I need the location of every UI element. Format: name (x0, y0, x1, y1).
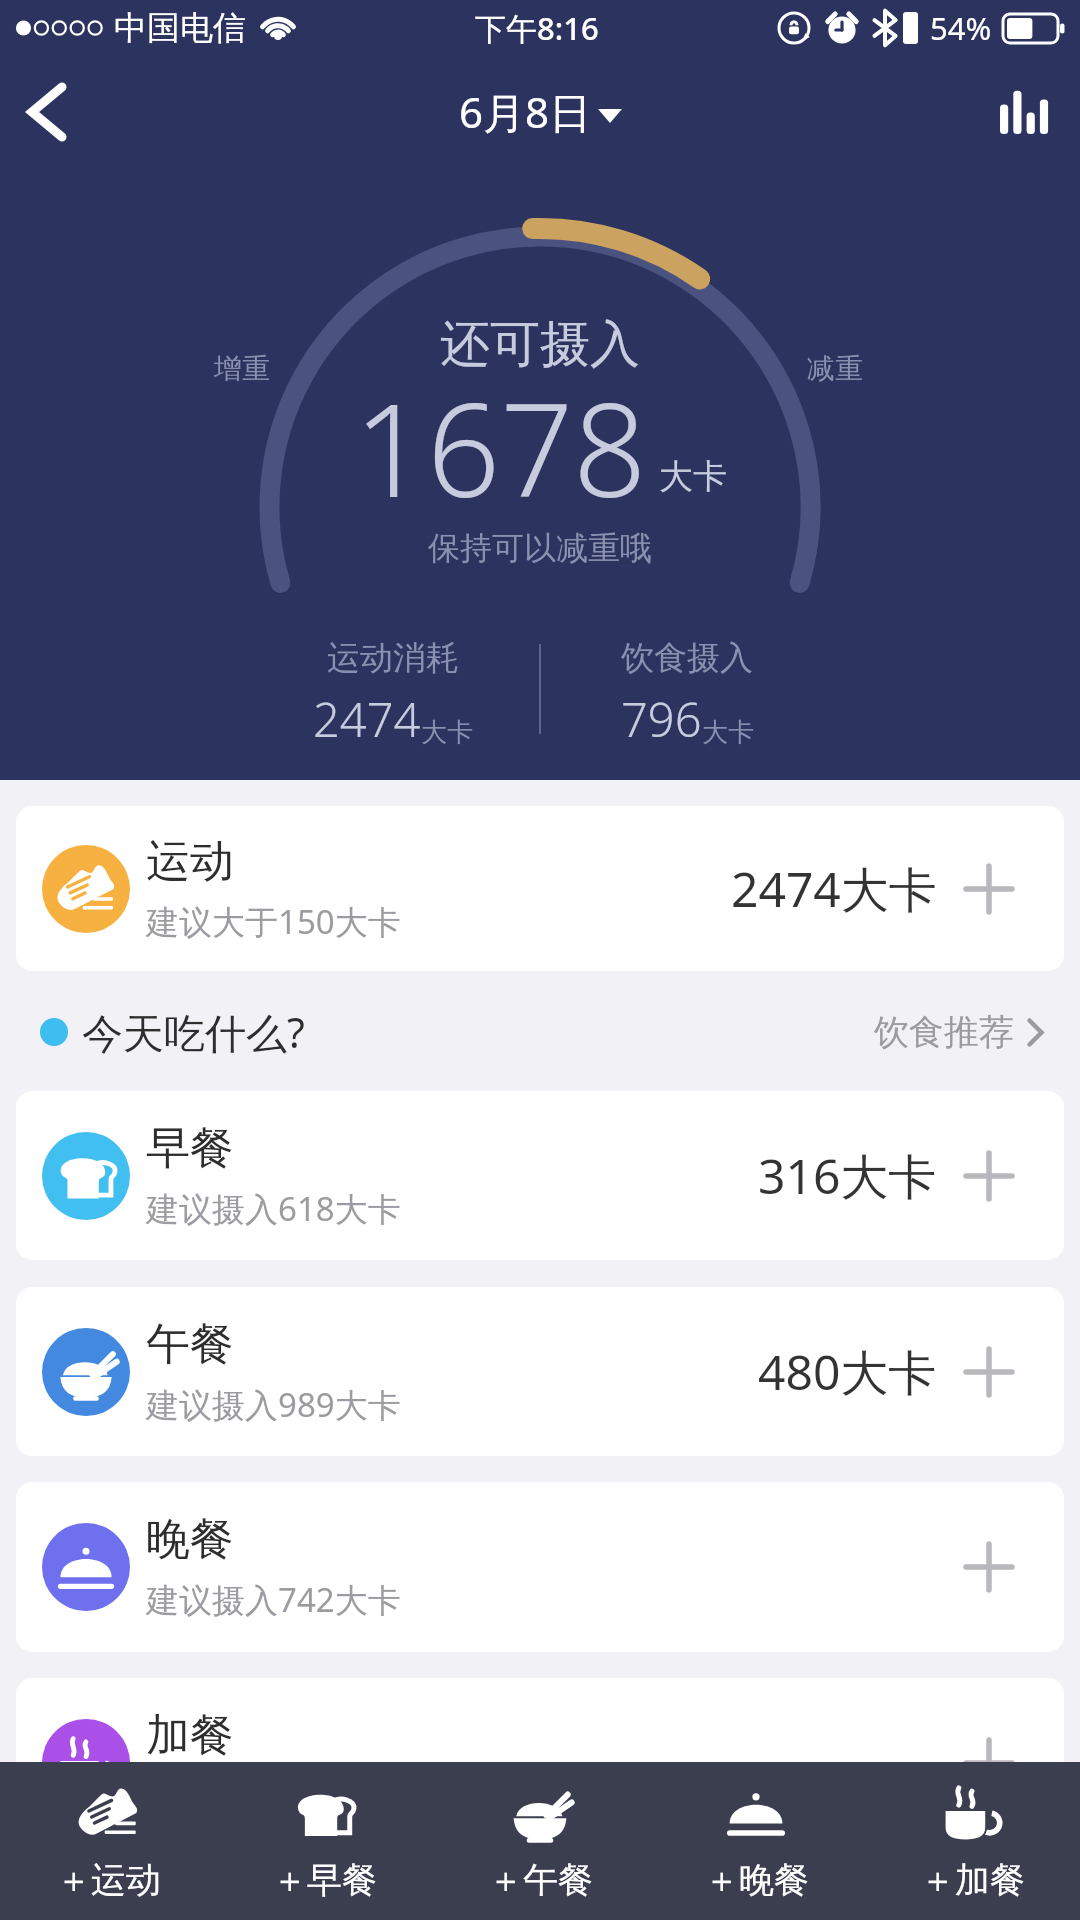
staticText: 建议摄入989大卡 (146, 1382, 401, 1427)
staticText: 大卡 (702, 716, 754, 749)
staticText: 晚餐 (146, 1512, 234, 1567)
staticText: 316大卡 (758, 1143, 937, 1209)
staticText: 2474 (313, 687, 421, 751)
staticText: 饮食摄入 (621, 637, 753, 679)
staticText: 早餐 (146, 1121, 234, 1176)
staticText: 796 (621, 687, 702, 751)
staticText: 480大卡 (758, 1339, 937, 1405)
staticText: 下午8:16 (475, 7, 599, 49)
staticText: 加餐 (146, 1708, 234, 1763)
button[interactable]: 晚餐 (16, 1482, 1064, 1652)
staticText: 减重 (807, 351, 863, 386)
staticText: ＋晚餐 (704, 1858, 809, 1902)
staticText: 饮食推荐 (874, 1010, 1014, 1054)
staticText: ＋午餐 (488, 1858, 593, 1902)
staticText: ＋早餐 (272, 1858, 377, 1902)
button[interactable]: Add 运动 (957, 857, 1021, 921)
button[interactable]: Add 晚餐 (957, 1535, 1021, 1599)
staticText: 建议大于150大卡 (146, 899, 401, 944)
staticText: 今天吃什么? (82, 1004, 305, 1060)
staticText: 建议摄入742大卡 (146, 1577, 401, 1622)
button[interactable]: ＋晚餐 (648, 1762, 864, 1920)
button[interactable]: Statistics (980, 66, 1070, 156)
button[interactable]: 6月8日 (459, 83, 622, 140)
staticText: 还可摄入 (440, 313, 640, 376)
staticText: 54% (930, 7, 992, 49)
staticText: 运动消耗 (327, 637, 459, 679)
staticText: 大卡 (421, 716, 473, 749)
button[interactable]: ＋加餐 (864, 1762, 1080, 1920)
button[interactable]: ＋运动 (0, 1762, 216, 1920)
staticText: 6月8日 (459, 83, 592, 140)
staticText: 保持可以减重哦 (428, 528, 652, 568)
button[interactable]: 运动 (16, 806, 1064, 971)
button[interactable]: Back (0, 59, 104, 163)
button[interactable]: 加餐 (16, 1678, 1064, 1848)
staticText: 1678 (354, 360, 647, 534)
staticText: 中国电信 (114, 7, 246, 49)
button[interactable]: ＋午餐 (432, 1762, 648, 1920)
staticText: 建议摄入618大卡 (146, 1186, 401, 1231)
button[interactable]: Add 午餐 (957, 1340, 1021, 1404)
button[interactable]: Add 早餐 (957, 1144, 1021, 1208)
button[interactable]: ＋早餐 (216, 1762, 432, 1920)
staticText: 大卡 (659, 455, 727, 498)
staticText: 午餐 (146, 1317, 234, 1372)
button[interactable]: 早餐 (16, 1091, 1064, 1260)
staticText: 增重 (214, 351, 270, 386)
staticText: ＋运动 (56, 1858, 161, 1902)
staticText: ＋加餐 (920, 1858, 1025, 1902)
button[interactable]: 午餐 (16, 1287, 1064, 1456)
staticText: 运动 (146, 834, 234, 889)
button[interactable]: Add 加餐 (957, 1731, 1021, 1795)
staticText: 2474大卡 (731, 856, 937, 922)
button[interactable]: 饮食推荐 (874, 1010, 1044, 1054)
